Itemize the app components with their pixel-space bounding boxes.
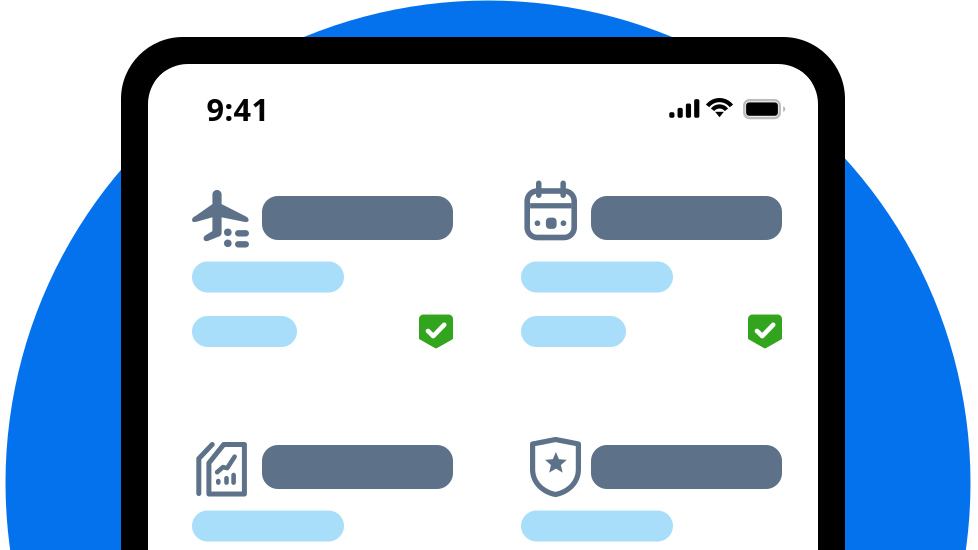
button[interactable]: Item (521, 438, 782, 541)
button[interactable]: Item (192, 189, 453, 348)
staticText: 9:41 (206, 89, 269, 129)
button[interactable]: Item (521, 189, 782, 348)
button[interactable]: Item (192, 438, 453, 541)
